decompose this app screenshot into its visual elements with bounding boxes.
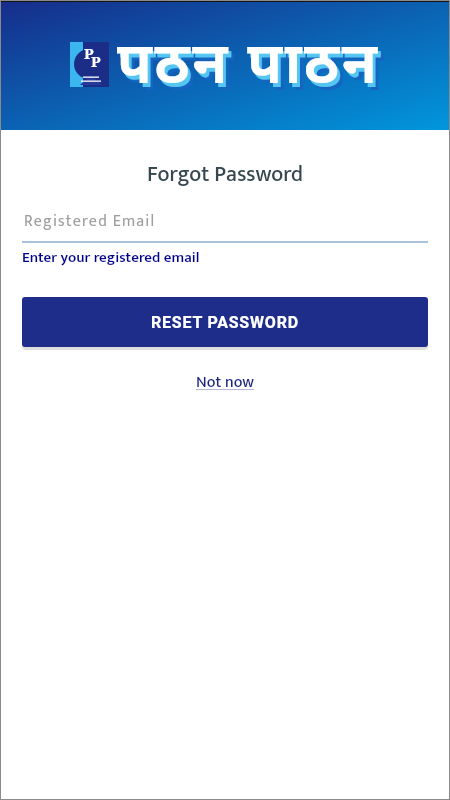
- staticText: Registered Email: [24, 208, 156, 235]
- staticText: पठन पाठन: [117, 22, 380, 100]
- staticText: Forgot Password: [0, 156, 450, 193]
- staticText: P: [84, 43, 94, 63]
- staticText: Not now: [196, 369, 255, 396]
- button[interactable]: Not now: [196, 369, 255, 396]
- staticText: Enter your registered email: [22, 245, 200, 270]
- staticText: पठन पाठन: [123, 29, 386, 107]
- staticText: P: [91, 51, 101, 71]
- button[interactable]: RESET PASSWORD: [22, 297, 428, 347]
- staticText: पठन पाठन: [120, 26, 383, 104]
- staticText: RESET PASSWORD: [151, 313, 299, 332]
